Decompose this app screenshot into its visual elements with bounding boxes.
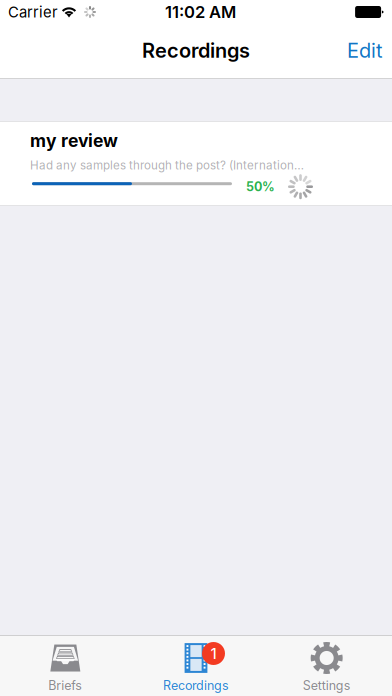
staticText: Carrier: [8, 3, 58, 21]
staticText: Briefs: [48, 678, 82, 693]
button[interactable]: Edit: [333, 30, 392, 71]
staticText: 1: [210, 644, 216, 662]
staticText: Recordings: [142, 38, 250, 63]
staticText: 50%: [246, 179, 275, 194]
staticText: Had any samples through the post? (Inter…: [30, 158, 304, 172]
button[interactable]: Settings: [261, 635, 392, 696]
staticText: Recordings: [163, 678, 229, 693]
button[interactable]: Briefs: [0, 635, 131, 696]
staticText: my review: [30, 130, 118, 151]
button[interactable]: 1: [131, 635, 261, 696]
staticText: Edit: [347, 38, 383, 63]
button[interactable]: my review: [0, 121, 392, 206]
staticText: 11:02 AM: [165, 2, 236, 22]
staticText: Settings: [303, 678, 351, 693]
